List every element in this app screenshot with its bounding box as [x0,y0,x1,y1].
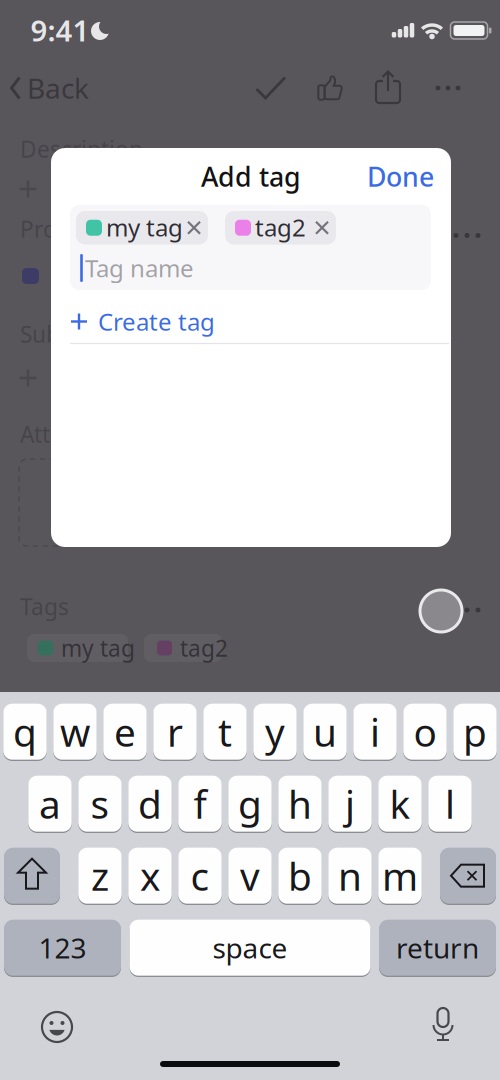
staticText: Back [27,69,89,107]
button[interactable]: Delete [440,848,496,906]
button[interactable]: u [303,704,347,762]
button[interactable]: k [378,776,422,834]
staticText: x [140,850,160,901]
staticText: f [193,778,206,829]
staticText: Tag name [85,252,194,284]
button[interactable]: Like [316,74,344,102]
staticText: Tags [20,591,69,621]
button[interactable]: x [128,848,172,906]
button[interactable]: w [53,704,97,762]
staticText: 123 [38,929,86,966]
staticText: o [413,706,436,757]
button[interactable]: Create tag [70,305,270,337]
button[interactable]: g [228,776,272,834]
button[interactable]: n [328,848,372,906]
button[interactable]: z [78,848,122,906]
button[interactable]: b [278,848,322,906]
staticText: c [190,850,209,901]
staticText: u [313,706,337,757]
staticText: tag2 [180,633,228,663]
staticText: p [463,706,487,757]
staticText: Subtasks [20,319,115,349]
button[interactable]: i [353,704,397,762]
staticText: h [288,778,312,829]
button[interactable]: c [178,848,222,906]
staticText: j [345,778,355,829]
staticText: Done [367,159,434,194]
staticText: return [396,929,479,966]
button[interactable]: Share [375,70,401,104]
staticText: a [39,778,61,829]
button[interactable]: q [3,704,47,762]
button[interactable]: Done [344,159,434,193]
button[interactable]: d [128,776,172,834]
button[interactable]: a [28,776,72,834]
staticText: tag2 [255,211,306,243]
staticText: Create tag [98,306,215,337]
button[interactable]: t [203,704,247,762]
button[interactable]: 123 [4,920,121,978]
button[interactable]: Tag name [70,246,431,290]
button[interactable]: p [453,704,497,762]
button[interactable]: Shift [4,848,60,906]
staticText: g [238,778,262,829]
staticText: n [338,850,362,901]
staticText: v [240,850,260,901]
button[interactable]: h [278,776,322,834]
button[interactable]: l [428,776,472,834]
staticText: m [382,850,418,901]
button[interactable]: r [153,704,197,762]
button[interactable]: m [378,848,422,906]
button[interactable]: Remove tag2 [225,211,336,244]
staticText: e [114,706,136,757]
button[interactable]: y [253,704,297,762]
button[interactable]: Back [10,66,100,110]
staticText: t [218,706,232,757]
staticText: Description [20,134,143,164]
button[interactable]: s [78,776,122,834]
staticText: b [288,850,312,901]
button[interactable]: return [379,920,496,978]
staticText: 9:41 [30,10,89,49]
staticText: w [60,706,90,757]
staticText: i [370,706,380,757]
staticText: q [13,706,37,757]
staticText: space [212,929,287,966]
button[interactable]: f [178,776,222,834]
button[interactable]: Emoji [41,1011,73,1043]
button[interactable]: More [435,85,460,90]
button[interactable]: Remove my tag [76,211,208,244]
staticText: Projects [20,214,106,244]
staticText: d [138,778,162,829]
staticText: s [90,778,109,829]
staticText: z [91,850,109,901]
staticText: Attachments [20,419,155,449]
staticText: Add tag [201,159,301,194]
staticText: k [389,778,410,829]
staticText: y [265,706,285,757]
button[interactable]: Dictate [429,1008,457,1042]
button[interactable]: o [403,704,447,762]
button[interactable]: v [228,848,272,906]
staticText: my tag [106,211,183,243]
button[interactable]: Complete [255,76,287,100]
button[interactable]: e [103,704,147,762]
staticText: r [167,706,183,757]
staticText: my tag [61,633,135,663]
button[interactable]: space [129,920,370,978]
staticText: l [445,778,455,829]
button[interactable]: j [328,776,372,834]
